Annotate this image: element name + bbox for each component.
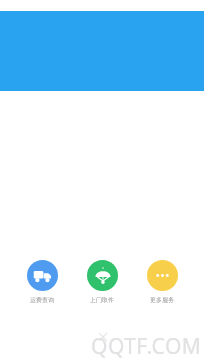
staticText: 运费查询: [30, 296, 54, 304]
staticText: 上门取件: [90, 296, 114, 304]
staticText: 更多服务: [150, 296, 174, 304]
staticText: QQTF.COM: [91, 332, 202, 361]
button[interactable]: 更多服务: [134, 260, 190, 304]
button[interactable]: 运费查询: [14, 260, 70, 304]
button[interactable]: 上门取件: [74, 260, 130, 304]
